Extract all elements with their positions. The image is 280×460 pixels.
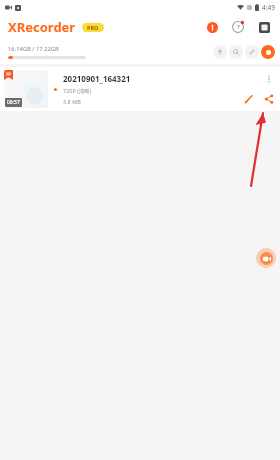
- button[interactable]: PRO: [82, 23, 104, 32]
- button[interactable]: Location: [213, 45, 227, 59]
- staticText: 4:49: [262, 3, 275, 12]
- button[interactable]: Screenshot tools: [256, 19, 272, 35]
- staticText: 3.8 MB: [63, 98, 81, 105]
- staticText: PRO: [87, 24, 99, 31]
- button[interactable]: Edit: [245, 45, 259, 59]
- button[interactable]: Share: [262, 92, 276, 106]
- button[interactable]: More options: [262, 72, 276, 86]
- button[interactable]: Floating recorder: [256, 248, 276, 268]
- button[interactable]: Alert: [204, 19, 220, 35]
- staticText: 00:57: [7, 99, 20, 106]
- button[interactable]: Help: [230, 19, 246, 35]
- button[interactable]: Search: [229, 45, 243, 59]
- staticText: 20210901_164321: [63, 73, 131, 84]
- staticText: XRecorder: [8, 18, 76, 36]
- staticText: 720P (清晰): [63, 87, 92, 95]
- button[interactable]: 00:57: [0, 67, 280, 111]
- button[interactable]: Record: [261, 45, 275, 59]
- button[interactable]: Edit: [242, 92, 256, 106]
- staticText: 16.14GB / 17.22GB: [8, 45, 59, 53]
- staticText: ?: [237, 23, 240, 31]
